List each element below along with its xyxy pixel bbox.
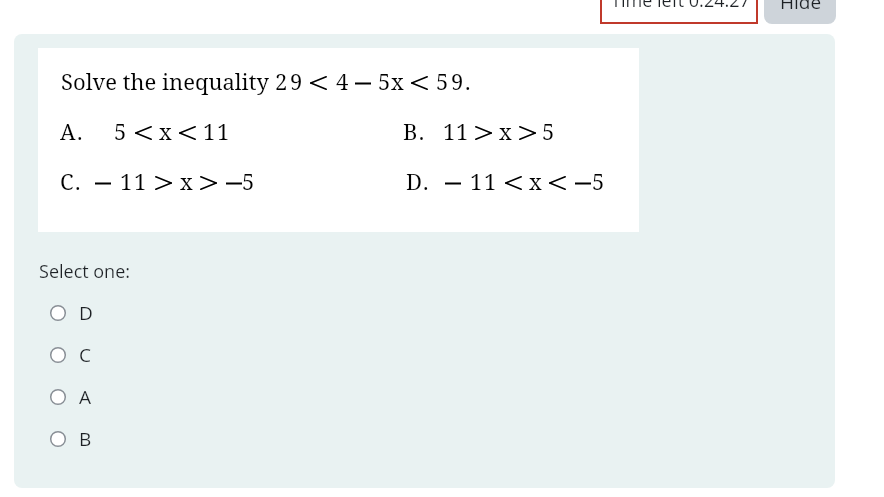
staticText: 5 [378,66,392,96]
staticText: C [79,342,91,368]
staticText: 1 [470,166,484,196]
staticText: Solve the inequality [61,66,269,96]
staticText: 9 [290,66,304,96]
button[interactable]: A [44,380,174,414]
staticText: B [79,426,92,452]
staticText: 9 [451,66,465,96]
staticText: B. [403,116,426,146]
staticText: 5 [242,166,256,196]
button[interactable]: Time left 0:24:27 [600,0,758,24]
staticText: A. [60,116,84,146]
staticText: C. [60,166,82,196]
staticText: Hide [780,0,822,15]
staticText: 1 [203,116,217,146]
staticText: x [529,166,544,196]
staticText: D. [406,166,430,196]
staticText: 5 [592,166,606,196]
staticText: x [391,66,406,96]
staticText: 2 [275,66,289,96]
button[interactable]: C [44,338,174,372]
staticText: 5 [114,116,128,146]
staticText: 1 [484,166,498,196]
staticText: 1 [217,116,231,146]
staticText: 5 [436,66,450,96]
staticText: 4 [336,66,350,96]
staticText: . [465,66,472,96]
staticText: A [79,384,92,410]
staticText: Select one: [39,259,131,284]
staticText: x [499,116,514,146]
button[interactable]: Hide [764,0,836,24]
staticText: 1 [120,166,134,196]
staticText: 1 [134,166,148,196]
staticText: 5 [542,116,556,146]
staticText: 1 [443,116,457,146]
staticText: D [79,300,93,326]
staticText: Time left 0:24:27 [611,0,750,13]
staticText: x [159,116,174,146]
button[interactable]: B [44,422,174,456]
staticText: x [180,166,195,196]
button[interactable]: D [44,296,174,330]
staticText: 1 [456,116,470,146]
